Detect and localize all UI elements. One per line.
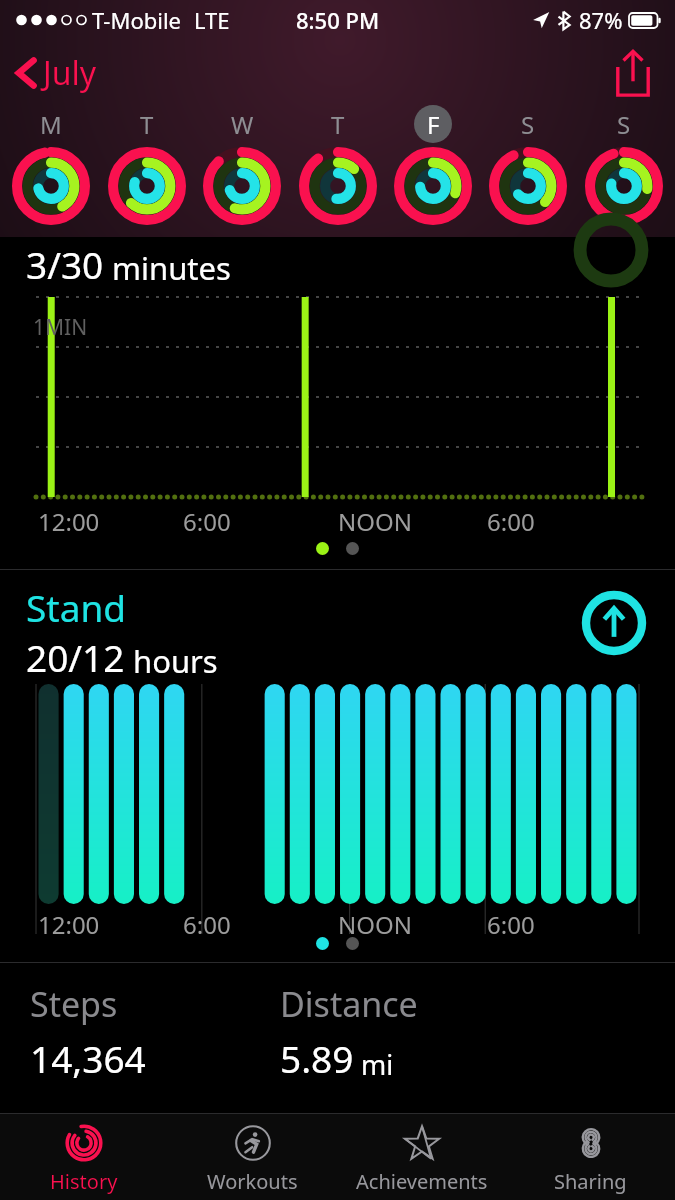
staticText: 5.89 (280, 1033, 354, 1083)
staticText: LTE (194, 5, 230, 35)
button[interactable]: F (389, 105, 477, 225)
staticText: 8:50 PM (296, 5, 380, 35)
button[interactable]: S (580, 105, 668, 225)
staticText: T (331, 108, 345, 141)
button[interactable]: July (10, 45, 103, 101)
staticText: Achievements (356, 1168, 488, 1195)
button[interactable]: S (484, 105, 572, 225)
staticText: 12:00 (38, 505, 100, 538)
staticText: S (521, 108, 535, 141)
button[interactable]: Sharing (506, 1114, 675, 1200)
staticText: 87% (579, 5, 623, 35)
staticText: Sharing (554, 1168, 627, 1195)
button[interactable]: M (7, 105, 95, 225)
staticText: hours (133, 640, 218, 682)
button[interactable]: Share (609, 45, 657, 101)
staticText: F (427, 108, 440, 141)
staticText: 6:00 (487, 908, 535, 941)
staticText: M (40, 108, 62, 141)
staticText: 20/12 (26, 632, 125, 682)
staticText: mi (361, 1046, 394, 1083)
button[interactable]: Distance (280, 981, 675, 1083)
button[interactable]: Steps (30, 981, 280, 1083)
button[interactable]: History (0, 1114, 168, 1200)
button[interactable]: T (294, 105, 382, 225)
staticText: 6:00 (183, 908, 231, 941)
staticText: 14,364 (30, 1033, 146, 1083)
staticText: Steps (30, 981, 118, 1027)
staticText: 6:00 (487, 505, 535, 538)
staticText: 3/30 (26, 239, 104, 289)
staticText: NOON (338, 908, 412, 941)
staticText: Workouts (207, 1168, 298, 1195)
staticText: S (617, 108, 631, 141)
staticText: 1MIN (33, 313, 88, 342)
staticText: Stand (26, 582, 127, 632)
staticText: 12:00 (38, 908, 100, 941)
staticText: T (140, 108, 154, 141)
button[interactable]: Workouts (168, 1114, 337, 1200)
button[interactable]: T (103, 105, 191, 225)
staticText: History (50, 1168, 118, 1195)
staticText: Distance (280, 981, 418, 1027)
staticText: T-Mobile (92, 5, 181, 35)
staticText: W (231, 108, 254, 141)
button[interactable]: W (198, 105, 286, 225)
staticText: minutes (112, 247, 231, 289)
staticText: 6:00 (183, 505, 231, 538)
button[interactable]: Achievements (337, 1114, 506, 1200)
button[interactable]: Stand goal complete (579, 588, 649, 658)
staticText: NOON (338, 505, 412, 538)
staticText: July (43, 51, 97, 95)
